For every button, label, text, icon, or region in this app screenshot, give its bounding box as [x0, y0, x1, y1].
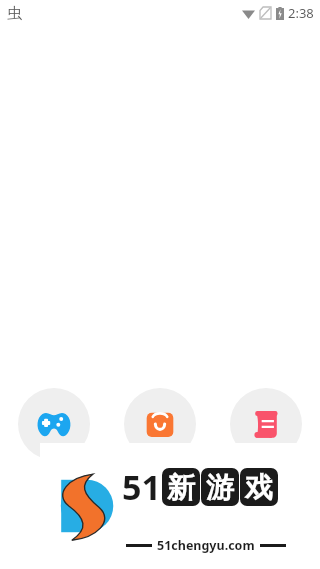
- staticText: 51chengyu.com: [157, 537, 255, 554]
- staticText: 51: [122, 464, 161, 510]
- button[interactable]: Games: [18, 388, 90, 460]
- button[interactable]: Strategy: [230, 388, 302, 460]
- staticText: 虫: [7, 4, 22, 23]
- staticText: 新: [167, 470, 195, 505]
- button[interactable]: Store: [124, 388, 196, 460]
- staticText: 游: [206, 470, 234, 505]
- staticText: 2:38: [288, 4, 314, 22]
- staticText: 戏: [245, 470, 273, 505]
